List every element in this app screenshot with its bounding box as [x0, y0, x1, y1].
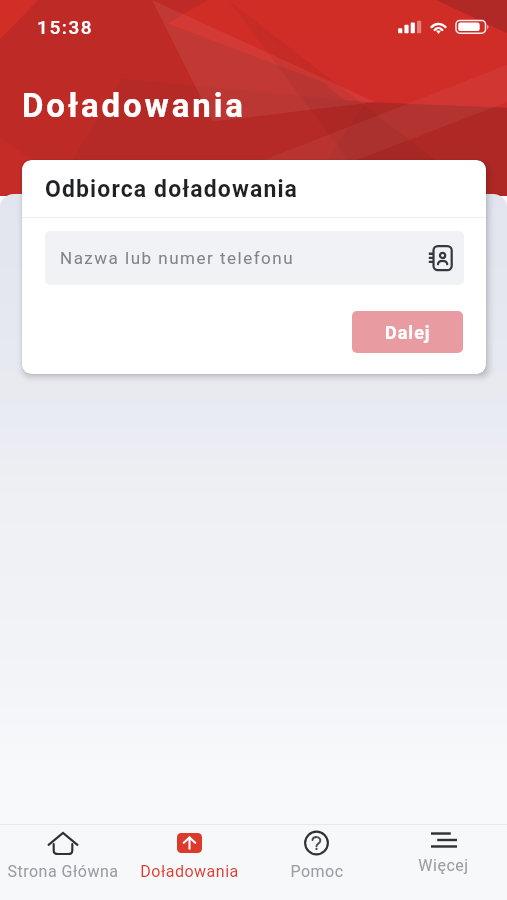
- button[interactable]: Nazwa lub numer telefonu: [45, 231, 464, 285]
- staticText: Pomoc: [290, 862, 344, 881]
- staticText: 15:38: [37, 16, 94, 38]
- staticText: Doładowania: [140, 862, 239, 881]
- button[interactable]: Pomoc: [253, 824, 380, 881]
- staticText: Odbiorca doładowania: [45, 176, 299, 203]
- staticText: Strona Główna: [7, 862, 119, 881]
- staticText: Więcej: [418, 856, 469, 875]
- button[interactable]: Więcej: [380, 824, 507, 875]
- staticText: Doładowania: [22, 86, 246, 125]
- button[interactable]: Doładowania: [126, 824, 253, 881]
- button[interactable]: Dalej: [352, 311, 463, 353]
- button[interactable]: Strona Główna: [0, 824, 126, 881]
- staticText: Nazwa lub numer telefonu: [60, 248, 295, 268]
- staticText: Dalej: [385, 322, 431, 343]
- button[interactable]: Wybierz z kontaktów: [424, 242, 456, 274]
